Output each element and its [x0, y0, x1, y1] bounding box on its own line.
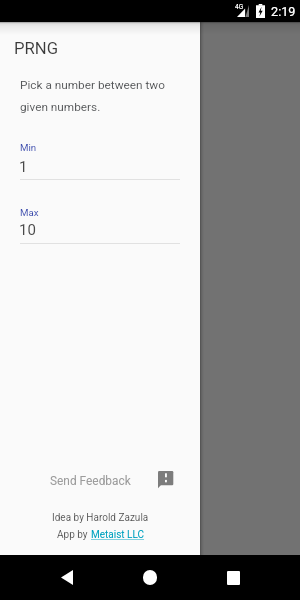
staticText: Max [20, 207, 39, 218]
staticText: given numbers. [20, 100, 101, 114]
other: Feedback [158, 471, 174, 489]
button[interactable]: Recent apps [208, 555, 258, 600]
button[interactable]: Max [20, 198, 180, 245]
staticText: PRNG [14, 39, 59, 59]
staticText: 2:19 [271, 4, 296, 19]
staticText: 10 [19, 221, 36, 239]
button[interactable]: Metaist LLC [91, 529, 145, 541]
staticText: App by [57, 529, 91, 541]
staticText: Idea by Harold Zazula [52, 512, 149, 524]
button[interactable]: Send Feedback [44, 465, 180, 491]
button[interactable]: Back [44, 555, 94, 600]
staticText: 4G [235, 3, 244, 11]
staticText: Min [20, 142, 37, 153]
staticText: 1 [19, 158, 28, 176]
staticText: Send Feedback [50, 474, 131, 488]
staticText: Pick a number between two [20, 78, 165, 92]
button[interactable]: Home [125, 555, 175, 600]
button[interactable]: Min [20, 134, 180, 181]
